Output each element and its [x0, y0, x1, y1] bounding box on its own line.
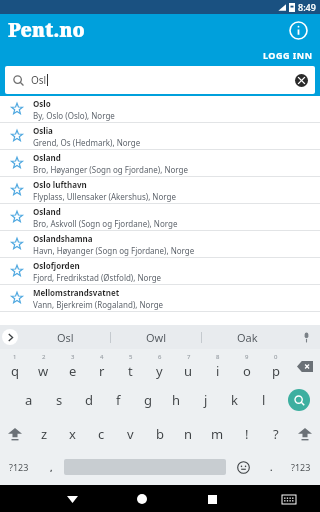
button[interactable]: 5	[116, 349, 145, 383]
staticText: l	[262, 391, 266, 409]
button[interactable]: a	[14, 383, 44, 417]
staticText: e	[69, 362, 77, 380]
button[interactable]: Clear	[290, 69, 312, 91]
button[interactable]: Osl	[5, 66, 315, 94]
button[interactable]: Backspace	[290, 349, 320, 383]
button[interactable]: 7	[174, 349, 203, 383]
button[interactable]: Owl	[111, 325, 201, 349]
button[interactable]: LOGG INN	[263, 49, 313, 61]
button[interactable]: s	[44, 383, 74, 417]
staticText: Flyplass, Ullensaker (Akershus), Norge	[33, 191, 176, 202]
staticText: Osl	[57, 330, 74, 345]
staticText: 0	[274, 353, 278, 361]
button[interactable]: Oslo lufthavn	[0, 177, 320, 203]
staticText: w	[38, 362, 49, 380]
staticText: v	[127, 425, 134, 443]
button[interactable]: n	[174, 417, 203, 451]
staticText: Owl	[146, 330, 167, 345]
staticText: Mellomstrandsvatnet	[33, 287, 120, 298]
button[interactable]: Search	[278, 383, 320, 417]
button[interactable]: Shift	[0, 417, 30, 451]
button[interactable]: 2	[29, 349, 58, 383]
button[interactable]: Mellomstrandsvatnet	[0, 285, 320, 311]
button[interactable]: k	[220, 383, 249, 417]
button[interactable]: Shift	[290, 417, 320, 451]
button[interactable]: h	[162, 383, 191, 417]
staticText: o	[243, 362, 251, 380]
staticText: Vann, Bjerkreim (Rogaland), Norge	[33, 299, 164, 310]
button[interactable]: 9	[232, 349, 261, 383]
staticText: Oslofjorden	[33, 260, 80, 271]
staticText: Grend, Os (Hedmark), Norge	[33, 137, 141, 148]
button[interactable]: 6	[145, 349, 174, 383]
staticText: c	[98, 425, 105, 443]
staticText: r	[99, 362, 105, 380]
staticText: Bro, Askvoll (Sogn og Fjordane), Norge	[33, 218, 178, 229]
staticText: 4	[100, 353, 104, 361]
button[interactable]: ?	[261, 417, 290, 451]
button[interactable]: 4	[87, 349, 116, 383]
staticText: 8	[216, 353, 220, 361]
staticText: By, Oslo (Oslo), Norge	[33, 110, 115, 121]
button[interactable]: 1	[0, 349, 29, 383]
button[interactable]: Oslia	[0, 123, 320, 149]
button[interactable]: l	[249, 383, 278, 417]
staticText: Oslo lufthavn	[33, 179, 87, 190]
button[interactable]: Home	[129, 486, 155, 512]
button[interactable]: ?123	[0, 451, 38, 483]
button[interactable]: j	[191, 383, 220, 417]
button[interactable]: Osl	[20, 325, 110, 349]
staticText: m	[211, 425, 224, 443]
staticText: p	[272, 362, 280, 380]
staticText: 5	[129, 353, 133, 361]
staticText: Fjord, Fredrikstad (Østfold), Norge	[33, 272, 162, 283]
button[interactable]: Back	[59, 486, 85, 512]
button[interactable]: 0	[261, 349, 290, 383]
button[interactable]: c	[87, 417, 116, 451]
staticText: Oslandshamna	[33, 233, 93, 244]
staticText: Osland	[33, 206, 61, 217]
button[interactable]: d	[74, 383, 104, 417]
staticText: u	[184, 362, 193, 380]
staticText: a	[25, 391, 33, 409]
button[interactable]: v	[116, 417, 145, 451]
button[interactable]: Voice input	[292, 325, 320, 349]
staticText: ?123	[9, 461, 29, 473]
staticText: f	[116, 391, 121, 409]
button[interactable]: Recents	[199, 486, 225, 512]
staticText: Osland	[33, 152, 61, 163]
button[interactable]: b	[145, 417, 174, 451]
staticText: y	[156, 362, 163, 380]
button[interactable]: m	[203, 417, 232, 451]
staticText: i	[216, 362, 220, 380]
button[interactable]: Keyboard	[276, 486, 302, 512]
button[interactable]: Oak	[202, 325, 292, 349]
staticText: Osl	[31, 73, 47, 87]
button[interactable]: Oslofjorden	[0, 258, 320, 284]
button[interactable]: g	[133, 383, 162, 417]
staticText: Pent.no	[8, 17, 85, 43]
button[interactable]: More	[0, 325, 20, 349]
staticText: j	[204, 391, 208, 409]
button[interactable]: z	[30, 417, 58, 451]
button[interactable]: Oslandshamna	[0, 231, 320, 257]
button[interactable]: Osland	[0, 204, 320, 230]
button[interactable]: 3	[58, 349, 87, 383]
button[interactable]: ?123	[282, 451, 320, 483]
button[interactable]: Oslo	[0, 96, 320, 122]
button[interactable]: 8	[203, 349, 232, 383]
staticText: k	[231, 391, 238, 409]
staticText: !	[245, 425, 249, 443]
button[interactable]: x	[58, 417, 87, 451]
button[interactable]: !	[232, 417, 261, 451]
button[interactable]: f	[104, 383, 133, 417]
staticText: s	[56, 391, 63, 409]
button[interactable]: Emoji	[226, 451, 260, 483]
staticText: ?	[273, 425, 279, 443]
button[interactable]: Osland	[0, 150, 320, 176]
button[interactable]: ,	[38, 451, 64, 483]
button[interactable]: Info	[285, 17, 311, 43]
button[interactable]: .	[260, 451, 282, 483]
staticText: z	[41, 425, 48, 443]
